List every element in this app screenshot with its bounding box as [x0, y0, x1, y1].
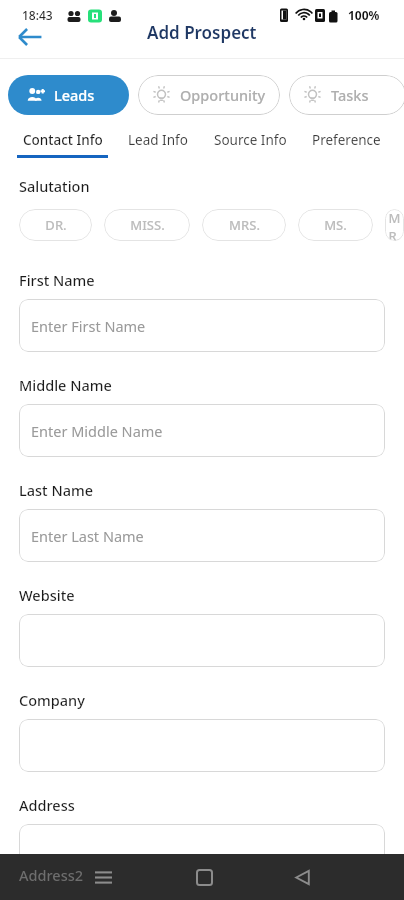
button[interactable]: Home	[184, 854, 224, 900]
staticText: 18:43	[22, 7, 53, 23]
staticText: Middle Name	[19, 375, 112, 395]
staticText: MISS.	[130, 216, 165, 234]
button[interactable]: Leads	[8, 75, 129, 115]
button[interactable]	[19, 719, 385, 772]
button[interactable]: Enter Last Name	[19, 509, 385, 562]
staticText: DR.	[45, 216, 67, 234]
staticText: Website	[19, 585, 75, 605]
button[interactable]: MRS.	[202, 209, 286, 241]
staticText: Tasks	[331, 85, 369, 105]
button[interactable]: DR.	[19, 209, 92, 241]
button[interactable]: MR.	[385, 209, 404, 241]
button[interactable]: Recents	[83, 854, 123, 900]
staticText: Add Prospect	[147, 21, 257, 44]
button[interactable]: Enter First Name	[19, 299, 385, 352]
staticText: Preference	[312, 131, 381, 149]
staticText: Enter Last Name	[31, 526, 144, 546]
button[interactable]: MISS.	[104, 209, 190, 241]
staticText: Salutation	[19, 176, 90, 196]
staticText: Enter First Name	[31, 316, 146, 336]
staticText: MRS.	[229, 216, 260, 234]
staticText: Enter Middle Name	[31, 421, 163, 441]
button[interactable]: Lead Info	[121, 126, 195, 168]
button[interactable]: Preference	[304, 126, 389, 168]
button[interactable]	[19, 824, 385, 877]
staticText: First Name	[19, 270, 95, 290]
button[interactable]: Source Info	[206, 126, 294, 168]
staticText: Lead Info	[128, 131, 188, 149]
button[interactable]: Contact Info	[13, 126, 113, 168]
staticText: Company	[19, 690, 85, 710]
staticText: MR.	[385, 209, 404, 241]
staticText: Address2	[19, 865, 84, 885]
staticText: Last Name	[19, 480, 94, 500]
staticText: Contact Info	[23, 131, 103, 149]
button[interactable]: Opportunity	[138, 75, 280, 115]
staticText: MS.	[324, 216, 347, 234]
staticText: Leads	[54, 85, 95, 105]
staticText: Source Info	[214, 131, 287, 149]
button[interactable]: Tasks	[289, 75, 404, 115]
staticText: Address	[19, 795, 75, 815]
button[interactable]: MS.	[298, 209, 373, 241]
staticText: 100%	[348, 7, 380, 23]
button[interactable]: Enter Middle Name	[19, 404, 385, 457]
staticText: Opportunity	[180, 85, 266, 105]
button[interactable]	[19, 614, 385, 667]
button[interactable]: Back	[282, 854, 322, 900]
button[interactable]: Back	[6, 12, 54, 60]
